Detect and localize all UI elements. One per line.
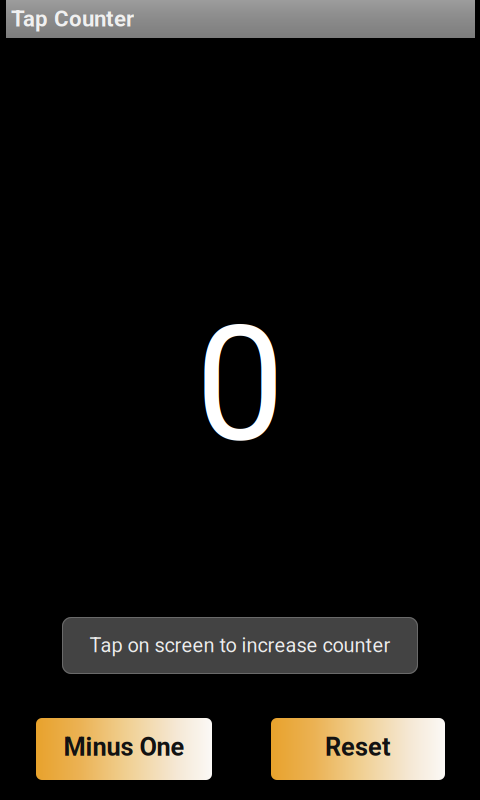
staticText: Tap on screen to increase counter [89, 634, 390, 657]
staticText: 0 [195, 291, 284, 477]
button[interactable]: Reset [271, 718, 445, 780]
staticText: Minus One [63, 732, 184, 762]
staticText: Reset [325, 732, 391, 762]
button[interactable]: Tap on screen to increase counter [62, 617, 418, 674]
button[interactable]: Minus One [36, 718, 212, 780]
staticText: Tap Counter [11, 6, 134, 32]
